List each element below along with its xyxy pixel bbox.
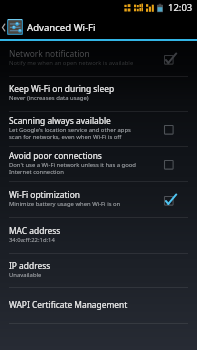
- staticText: IP address: [9, 260, 51, 271]
- staticText: WAPI Certificate Management: [9, 299, 128, 310]
- staticText: Scanning always available: [9, 115, 111, 126]
- button[interactable]: WAPI Certificate Management: [0, 288, 197, 324]
- staticText: Notify me when an open network is availa…: [9, 59, 134, 67]
- button[interactable]: MAC address: [0, 218, 197, 254]
- staticText: Don't use a Wi-Fi network unless it has …: [9, 161, 138, 176]
- staticText: Let Google's location service and other …: [9, 126, 138, 141]
- staticText: MAC address: [9, 225, 61, 236]
- button[interactable]: Avoid poor connections: [0, 147, 197, 182]
- button[interactable]: Keep Wi-Fi on during sleep: [0, 77, 197, 112]
- staticText: Never (increases data usage): [9, 94, 89, 102]
- staticText: 34:0a:ff:22:1d:14: [9, 236, 55, 244]
- button[interactable]: Wi-Fi optimization: [0, 182, 197, 218]
- staticText: Avoid poor connections: [9, 150, 102, 161]
- staticText: Unavailable: [9, 271, 42, 279]
- staticText: Minimize battery usage when Wi-Fi is on: [9, 200, 121, 208]
- button[interactable]: Scanning always available: [0, 112, 197, 147]
- staticText: Keep Wi-Fi on during sleep: [9, 83, 115, 94]
- button[interactable]: Network notification: [0, 41, 197, 77]
- staticText: 12:03: [168, 1, 193, 14]
- staticText: Wi-Fi optimization: [9, 189, 80, 200]
- staticText: Network notification: [9, 48, 90, 59]
- button[interactable]: IP address: [0, 254, 197, 288]
- button[interactable]: Navigate up: [0, 19, 97, 35]
- staticText: Advanced Wi-Fi: [27, 21, 96, 34]
